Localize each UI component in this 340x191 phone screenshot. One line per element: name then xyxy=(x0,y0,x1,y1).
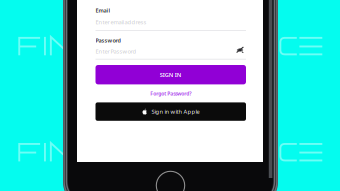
staticText: Email xyxy=(95,7,110,14)
button[interactable]: Sign in with Apple xyxy=(95,102,246,121)
button[interactable]: SIGN IN xyxy=(95,65,246,84)
staticText: Enter email address xyxy=(95,18,146,26)
staticText: Sign in with Apple xyxy=(151,108,199,115)
button[interactable]: Forgot Password? xyxy=(95,89,246,98)
staticText: Enter Password xyxy=(95,47,136,55)
staticText: SIGN IN xyxy=(160,71,182,79)
staticText: Forgot Password? xyxy=(150,90,191,97)
button[interactable]: Show password xyxy=(233,44,247,56)
staticText: Password xyxy=(95,37,120,44)
